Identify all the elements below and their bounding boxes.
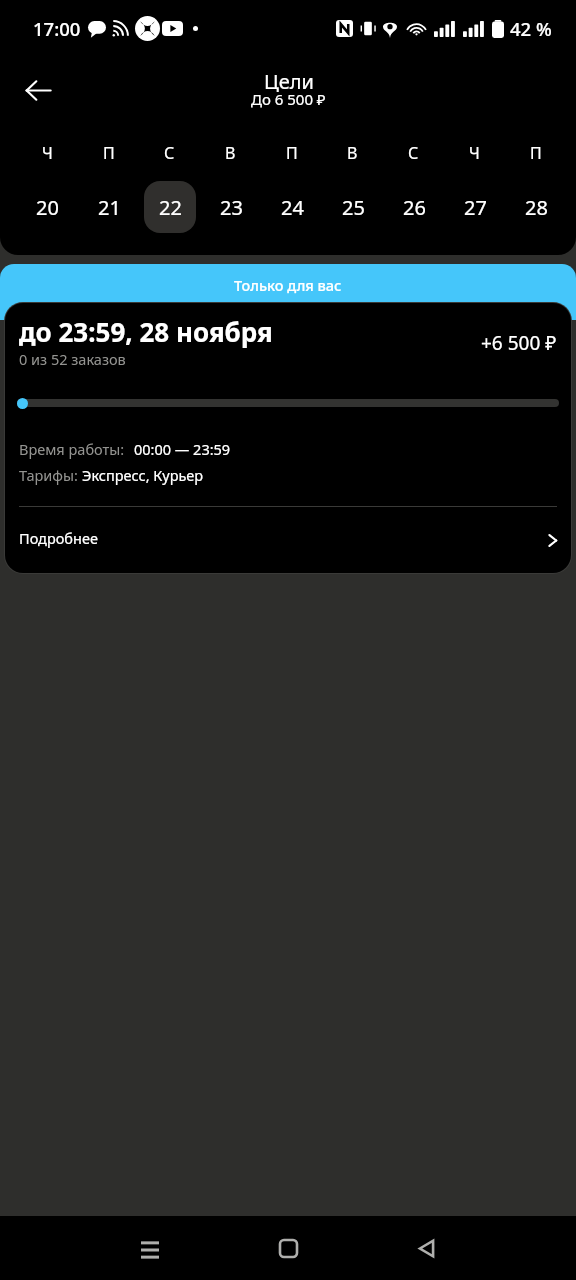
staticText: +6 500 ₽ <box>481 330 557 356</box>
staticText: 27 <box>464 194 487 221</box>
staticText: Тарифы: <box>19 465 78 485</box>
staticText: В <box>225 142 236 164</box>
staticText: Ч <box>469 142 480 164</box>
button[interactable]: Recent apps <box>127 1225 173 1271</box>
staticText: Подробнее <box>19 528 98 548</box>
staticText: П <box>286 142 298 164</box>
button[interactable]: С <box>139 142 200 233</box>
button[interactable]: до 23:59, 28 ноября <box>5 303 571 573</box>
staticText: 28 <box>525 194 548 221</box>
button[interactable]: В <box>200 142 261 233</box>
button[interactable]: Back <box>403 1225 449 1271</box>
staticText: Экспресс, Курьер <box>82 465 204 485</box>
staticText: 17:00 <box>33 16 81 41</box>
button[interactable]: П <box>261 142 322 233</box>
staticText: Ч <box>42 142 53 164</box>
staticText: Только для вас <box>234 275 342 295</box>
staticText: 25 <box>342 194 365 221</box>
staticText: 22 <box>159 194 182 221</box>
staticText: 26 <box>403 194 426 221</box>
button[interactable]: В <box>322 142 383 233</box>
staticText: 24 <box>281 194 304 221</box>
staticText: 23 <box>220 194 243 221</box>
staticText: 20 <box>36 194 59 221</box>
button[interactable]: П <box>78 142 139 233</box>
staticText: Цели <box>264 68 314 95</box>
staticText: С <box>164 142 175 164</box>
button[interactable]: Back <box>12 64 64 116</box>
staticText: До 6 500 ₽ <box>251 89 326 109</box>
staticText: 00:00 — 23:59 <box>134 439 231 459</box>
staticText: 42 % <box>510 16 552 41</box>
staticText: П <box>103 142 115 164</box>
button[interactable]: С <box>383 142 444 233</box>
staticText: С <box>408 142 419 164</box>
staticText: Время работы: <box>19 439 125 459</box>
staticText: 21 <box>98 194 121 221</box>
staticText: П <box>530 142 542 164</box>
button[interactable]: Подробнее <box>5 507 571 573</box>
button[interactable]: Home <box>265 1225 311 1271</box>
staticText: В <box>347 142 358 164</box>
button[interactable]: П <box>505 142 566 233</box>
staticText: 0 из 52 заказов <box>19 349 126 369</box>
button[interactable]: Ч <box>16 142 78 233</box>
button[interactable]: Ч <box>444 142 505 233</box>
staticText: до 23:59, 28 ноября <box>19 314 273 349</box>
